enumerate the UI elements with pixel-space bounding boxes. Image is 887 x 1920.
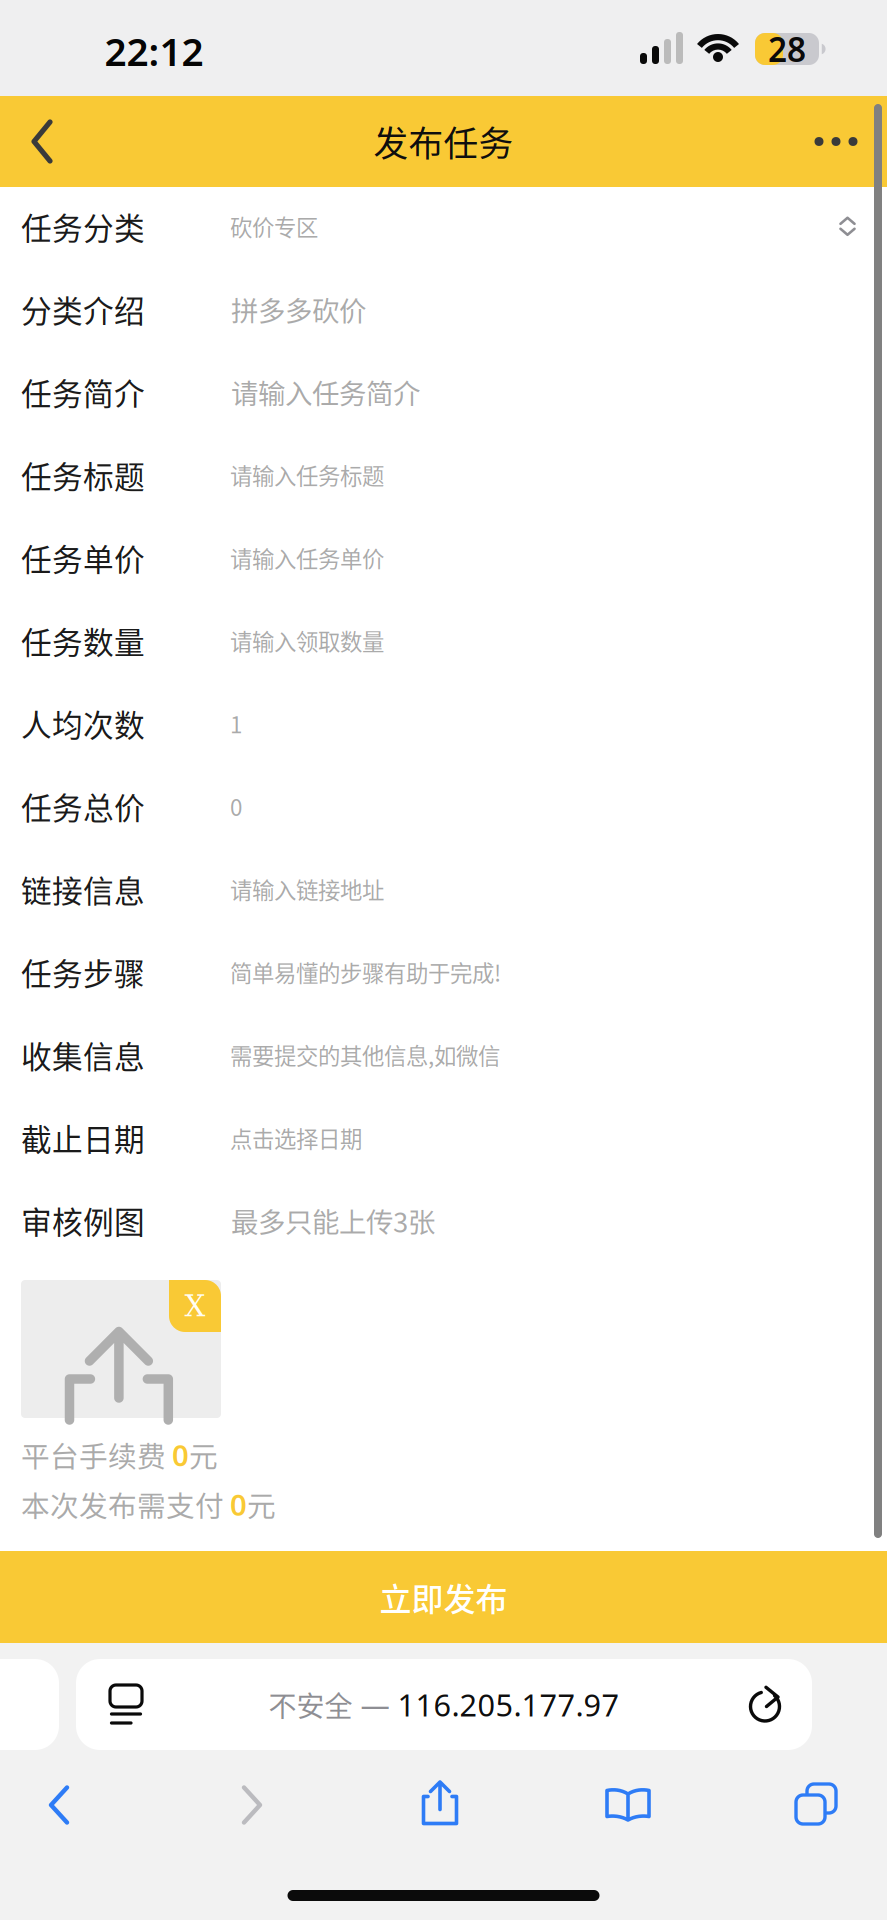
staticText: 最多只能上传3张 — [231, 1201, 435, 1240]
staticText: 1 — [230, 707, 242, 740]
staticText: — — [352, 1685, 397, 1724]
button[interactable]: 人均次数 — [0, 682, 887, 765]
staticText: 审核例图 — [21, 1198, 145, 1243]
button[interactable]: 分享 — [385, 1767, 495, 1839]
staticText: 任务总价 — [21, 784, 145, 828]
button[interactable]: 审核例图 — [0, 1179, 887, 1262]
button[interactable]: 任务步骤 — [0, 930, 887, 1013]
staticText: 简单易懂的步骤有助于完成! — [230, 956, 501, 988]
button[interactable]: 收集信息 — [0, 1013, 887, 1096]
staticText: 立即发布 — [379, 1574, 507, 1620]
button[interactable]: 任务总价 — [0, 765, 887, 848]
staticText: 请输入任务简介 — [231, 372, 420, 412]
button[interactable]: 链接信息 — [0, 848, 887, 930]
button[interactable]: 分类介绍 — [0, 268, 887, 350]
staticText: 人均次数 — [21, 701, 145, 746]
staticText: 分类介绍 — [21, 287, 145, 331]
staticText: 链接信息 — [21, 867, 145, 911]
staticText: 任务标题 — [21, 453, 145, 497]
staticText: 请输入任务单价 — [230, 541, 384, 574]
button[interactable]: 立即发布 — [0, 1551, 887, 1643]
button[interactable]: 删除图片 — [21, 1280, 221, 1418]
staticText: 任务步骤 — [21, 950, 145, 994]
button[interactable]: 任务分类 — [0, 185, 887, 268]
button[interactable]: 任务数量 — [0, 599, 887, 682]
button[interactable]: 前进 — [197, 1769, 307, 1841]
button[interactable]: 任务标题 — [0, 433, 887, 516]
staticText: 任务数量 — [21, 618, 145, 663]
staticText: 砍价专区 — [230, 210, 318, 242]
staticText: 元 — [247, 1483, 276, 1525]
button[interactable]: 标签页 — [761, 1768, 871, 1840]
staticText: 点击选择日期 — [230, 1121, 362, 1154]
staticText: 0 — [172, 1435, 189, 1474]
button[interactable]: 更多 — [785, 96, 887, 187]
staticText: 任务分类 — [21, 204, 145, 248]
staticText: 28 — [768, 27, 806, 71]
staticText: 发布任务 — [373, 116, 513, 167]
button[interactable]: 截止日期 — [0, 1096, 887, 1179]
staticText: 收集信息 — [21, 1033, 145, 1077]
staticText: 0 — [230, 1485, 247, 1524]
staticText: 不安全 — [268, 1684, 352, 1725]
button[interactable]: 不安全 — [76, 1659, 812, 1750]
button[interactable]: 返回 — [0, 96, 84, 187]
staticText: 请输入任务标题 — [230, 459, 384, 491]
staticText: 本次发布需支付 — [21, 1483, 230, 1525]
staticText: 需要提交的其他信息,如微信 — [230, 1039, 500, 1071]
button[interactable]: 后退 — [4, 1769, 114, 1841]
button[interactable]: 任务简介 — [0, 351, 887, 433]
staticText: X — [184, 1289, 205, 1323]
staticText: 平台手续费 — [21, 1434, 172, 1475]
staticText: 元 — [189, 1434, 218, 1475]
staticText: 116.205.177.97 — [397, 1684, 619, 1725]
staticText: 请输入领取数量 — [230, 624, 384, 657]
staticText: 请输入链接地址 — [230, 873, 384, 905]
staticText: 拼多多砍价 — [231, 289, 366, 329]
staticText: 截止日期 — [21, 1115, 145, 1160]
staticText: 22:12 — [104, 25, 203, 77]
staticText: 任务简介 — [21, 370, 145, 414]
button[interactable]: 书签 — [573, 1769, 683, 1841]
button[interactable]: 任务单价 — [0, 516, 887, 599]
staticText: 任务单价 — [21, 535, 145, 580]
staticText: 0 — [230, 790, 242, 822]
